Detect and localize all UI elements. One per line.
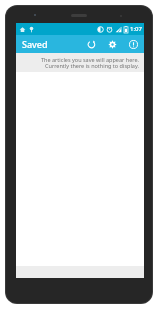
staticText: 1:07 xyxy=(130,25,142,33)
button[interactable]: Info xyxy=(126,37,140,51)
staticText: Saved xyxy=(22,38,48,50)
button[interactable]: Settings xyxy=(105,37,119,51)
staticText: The articles you save will appear here. … xyxy=(34,56,139,70)
button[interactable]: Refresh xyxy=(84,37,98,51)
